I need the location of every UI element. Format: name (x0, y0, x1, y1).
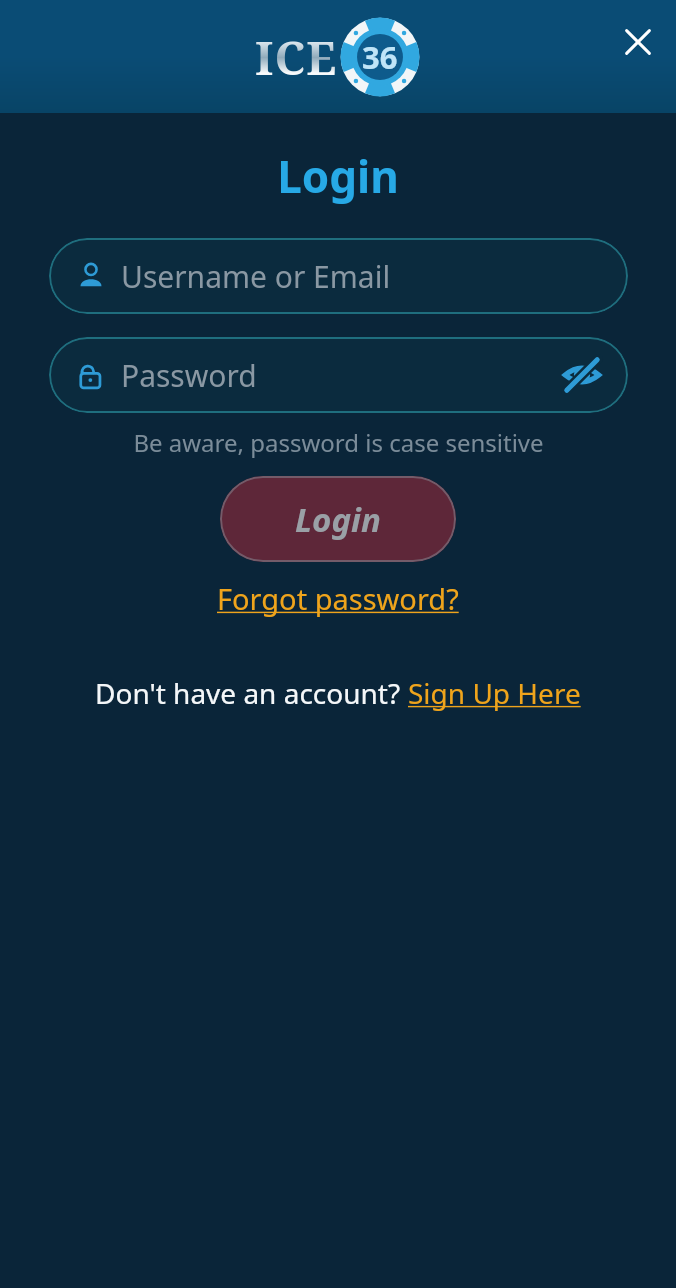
staticText: 36 (362, 36, 398, 78)
button[interactable]: Username or Email (49, 238, 628, 314)
staticText: Login (295, 497, 381, 542)
staticText: Username or Email (121, 256, 391, 297)
staticText: Don't have an account? (95, 674, 408, 712)
staticText: ICE (255, 26, 338, 89)
button[interactable]: Password (49, 337, 628, 413)
staticText: Sign Up Here (408, 674, 581, 712)
button[interactable]: Show password (558, 351, 606, 399)
button[interactable]: Close (606, 10, 670, 74)
staticText: Be aware, password is case sensitive (133, 426, 544, 459)
staticText: Password (121, 355, 257, 396)
staticText: Forgot password? (217, 579, 459, 618)
staticText: Login (277, 146, 399, 206)
button[interactable]: Login (220, 476, 456, 562)
button[interactable]: Sign Up Here (408, 674, 581, 712)
button[interactable]: Forgot password? (209, 576, 467, 621)
